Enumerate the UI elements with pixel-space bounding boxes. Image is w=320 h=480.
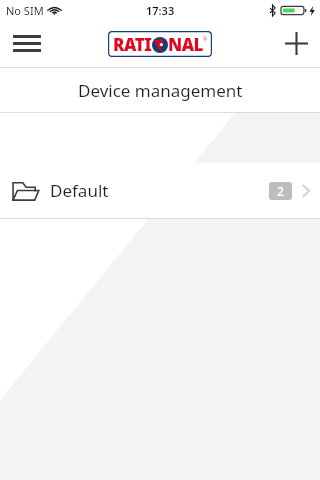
staticText: ® <box>203 36 208 43</box>
staticText: No SIM <box>6 3 44 18</box>
staticText: NAL <box>168 33 203 56</box>
button[interactable]: Menu <box>0 20 54 67</box>
staticText: Device management <box>78 79 243 102</box>
staticText: Default <box>50 179 109 202</box>
button[interactable]: Add <box>272 20 320 67</box>
staticText: 2 <box>277 183 284 199</box>
button[interactable]: Default <box>0 163 320 218</box>
staticText: RATI <box>113 33 152 56</box>
staticText: 17:33 <box>146 3 175 18</box>
